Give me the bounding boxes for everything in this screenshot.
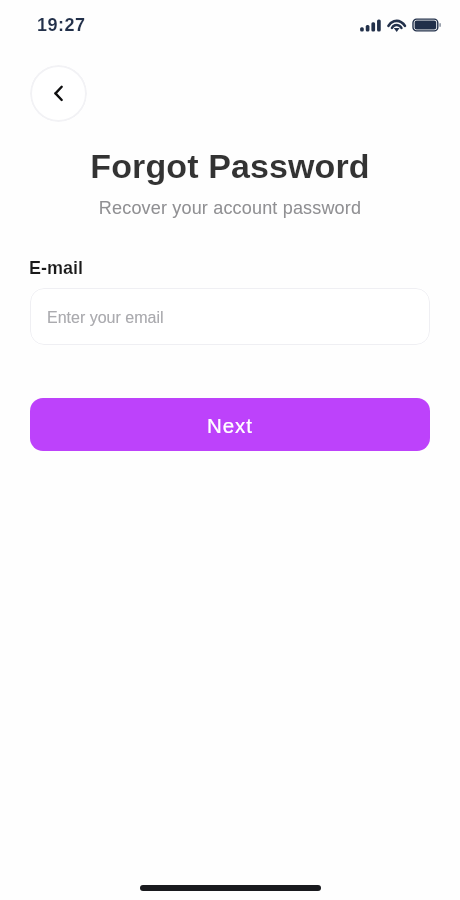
staticText: Recover your account password <box>0 198 460 218</box>
staticText: 19:27 <box>37 15 86 35</box>
staticText: Next <box>207 414 253 437</box>
button[interactable]: Enter your email <box>30 288 430 345</box>
staticText: Enter your email <box>47 309 164 327</box>
staticText: E-mail <box>29 258 84 278</box>
button[interactable]: Back <box>30 65 87 122</box>
staticText: Forgot Password <box>0 147 460 185</box>
button[interactable]: Next <box>30 398 430 451</box>
